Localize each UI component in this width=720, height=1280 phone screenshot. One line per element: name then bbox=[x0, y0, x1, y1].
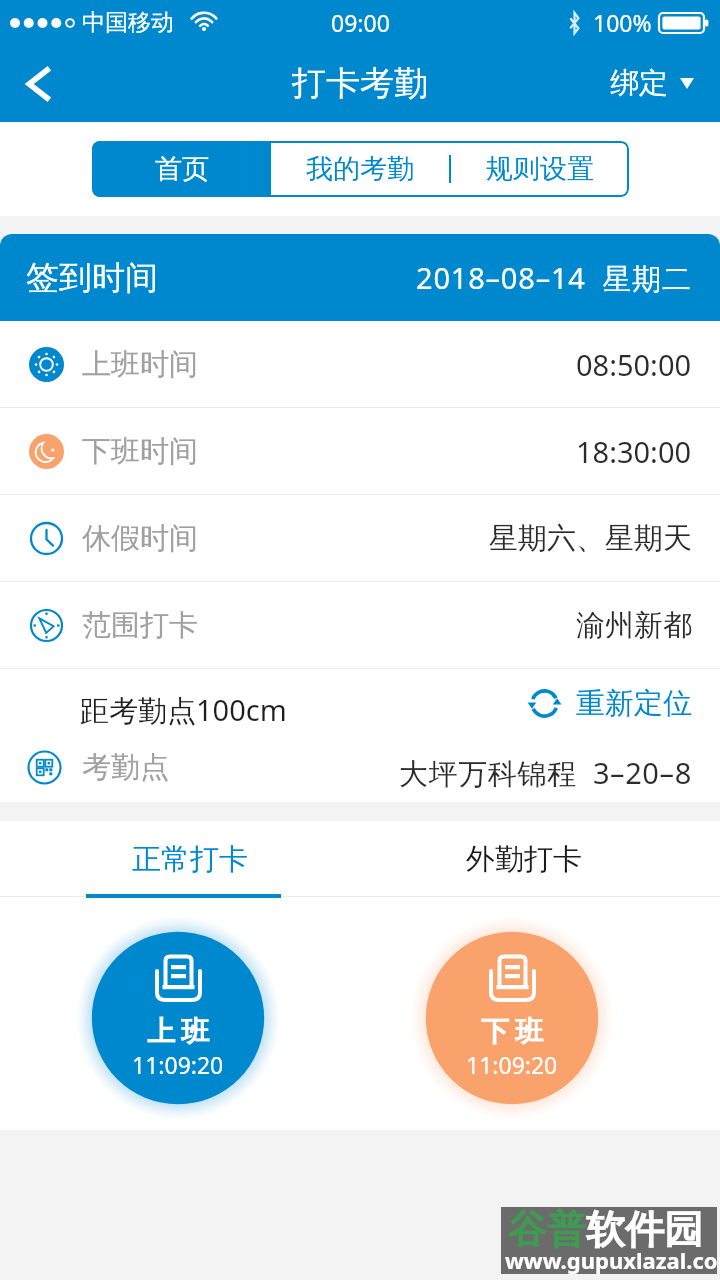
staticText: 11:09:20 bbox=[466, 1049, 558, 1080]
staticText: 规则设置 bbox=[486, 152, 594, 186]
staticText: 打卡考勤 bbox=[292, 62, 428, 105]
staticText: 下班时间 bbox=[82, 433, 198, 470]
button[interactable]: 休假时间 bbox=[0, 495, 720, 581]
staticText: 星期六、星期天 bbox=[489, 520, 692, 557]
staticText: www.gupuxlazal.com bbox=[505, 1245, 720, 1275]
staticText: 11:09:20 bbox=[132, 1049, 224, 1080]
staticText: 08:50:00 bbox=[576, 345, 692, 384]
button[interactable]: 范围打卡 bbox=[0, 582, 720, 668]
staticText: 软件园 bbox=[586, 1205, 703, 1254]
staticText: 外勤打卡 bbox=[466, 841, 582, 878]
staticText: 中国移动 bbox=[82, 8, 174, 37]
staticText: 上班 bbox=[144, 1014, 212, 1049]
staticText: 签到时间 bbox=[26, 257, 158, 299]
button[interactable]: 外勤打卡 bbox=[426, 821, 621, 897]
staticText: 休假时间 bbox=[82, 520, 198, 557]
staticText: 下班 bbox=[478, 1014, 546, 1049]
staticText: 正常打卡 bbox=[132, 841, 248, 878]
staticText: 重新定位 bbox=[576, 685, 692, 722]
staticText: 距考勤点100cm bbox=[80, 690, 287, 730]
staticText: 我的考勤 bbox=[306, 152, 414, 186]
staticText: 2018–08–14 星期二 bbox=[416, 258, 692, 298]
button[interactable]: 上班时间 bbox=[0, 321, 720, 407]
button[interactable]: 绑定 bbox=[0, 45, 720, 122]
staticText: 绑定 bbox=[610, 65, 668, 102]
staticText: 09:00 bbox=[331, 7, 390, 38]
staticText: 首页 bbox=[155, 152, 209, 186]
staticText: 谷普 bbox=[508, 1205, 586, 1254]
staticText: 100% bbox=[593, 7, 652, 38]
staticText: 18:30:00 bbox=[576, 432, 692, 471]
button[interactable]: 下班时间 bbox=[0, 408, 720, 494]
button[interactable]: 正常打卡 bbox=[92, 821, 287, 897]
button[interactable]: 规则设置 bbox=[451, 141, 629, 197]
staticText: 上班时间 bbox=[82, 346, 198, 383]
staticText: 大坪万科锦程 3–20–8 bbox=[399, 753, 692, 793]
button[interactable]: 首页 bbox=[92, 141, 271, 197]
button[interactable]: Back bbox=[0, 45, 74, 122]
button[interactable]: 重新定位 bbox=[526, 685, 692, 722]
staticText: 渝州新都 bbox=[576, 607, 692, 644]
button[interactable]: 我的考勤 bbox=[271, 141, 449, 197]
staticText: 考勤点 bbox=[82, 749, 169, 786]
staticText: 范围打卡 bbox=[82, 607, 198, 644]
